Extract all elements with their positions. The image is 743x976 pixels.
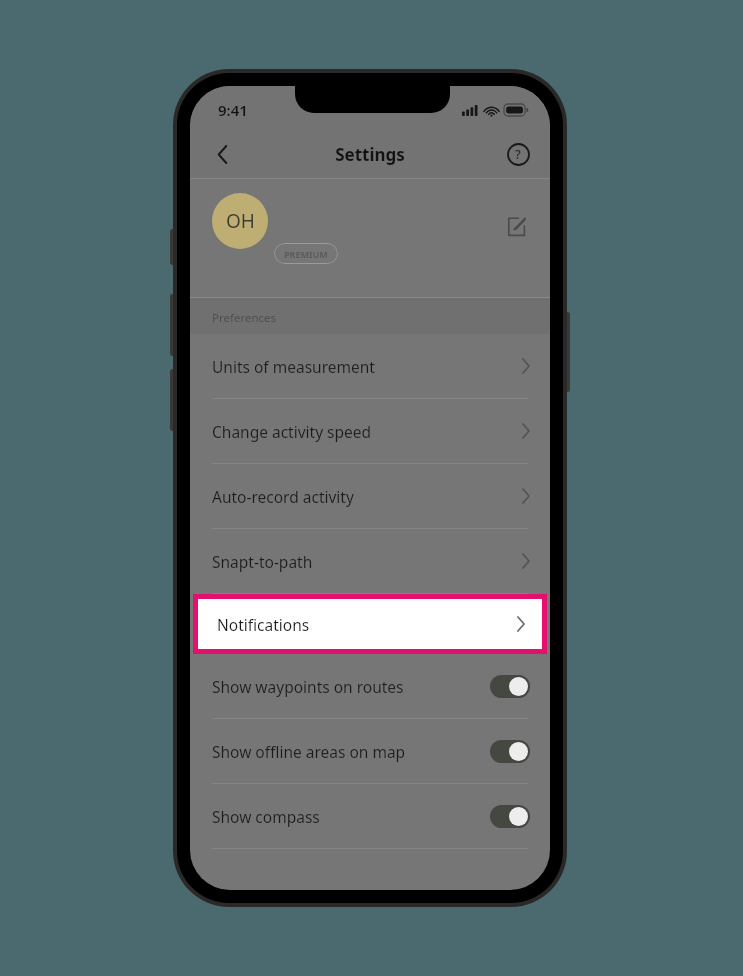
button[interactable]: Units of measurement [190,334,550,398]
button[interactable]: Edit profile [496,207,536,247]
button[interactable]: Show offline areas on map [190,719,550,783]
button[interactable]: Show waypoints on routes [190,654,550,718]
staticText: 9:41 [218,100,248,120]
staticText: ? [515,145,521,163]
staticText: Auto-record activity [212,486,522,507]
staticText: Settings [335,143,405,166]
button[interactable]: Show compass toggle, on [490,805,530,828]
staticText: Show offline areas on map [212,741,490,762]
button[interactable]: OH [212,193,268,249]
button[interactable]: Show compass [190,784,550,848]
staticText: Preferences [212,310,277,326]
button[interactable]: PREMIUM [274,243,338,264]
staticText: Snapt-to-path [212,551,522,572]
button[interactable]: Show waypoints on routes toggle, on [490,675,530,698]
staticText: Change activity speed [212,421,522,442]
staticText: Show compass [212,806,490,827]
button[interactable]: Change activity speed [190,399,550,463]
button[interactable]: Back [202,134,242,174]
staticText: Units of measurement [212,356,522,377]
staticText: Show waypoints on routes [212,676,490,697]
button[interactable]: Help [498,134,538,174]
button[interactable]: Snapt-to-path [190,529,550,593]
staticText: OH [226,208,255,234]
button[interactable]: Show offline areas on map toggle, on [490,740,530,763]
staticText: PREMIUM [284,248,328,260]
button[interactable]: Notifications [193,594,547,654]
button[interactable]: Auto-record activity [190,464,550,528]
staticText: Notifications [217,614,517,635]
